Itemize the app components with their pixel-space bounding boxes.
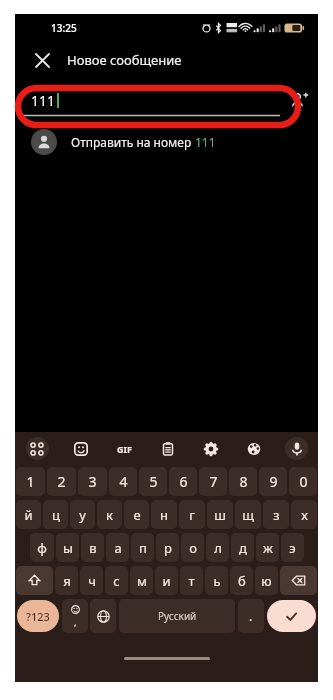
button[interactable]: Themes	[232, 432, 275, 465]
button[interactable]: ю	[255, 566, 278, 595]
staticText: 1	[26, 472, 35, 491]
button[interactable]: 1	[16, 467, 45, 496]
button[interactable]: т	[180, 566, 203, 595]
button[interactable]: Отправить на номер	[15, 124, 318, 160]
button[interactable]: Close	[28, 46, 56, 74]
button[interactable]: Emoji	[62, 599, 88, 633]
button[interactable]: о	[181, 533, 204, 562]
staticText: к	[106, 506, 113, 524]
button[interactable]: ь	[205, 566, 228, 595]
staticText: ж	[263, 539, 273, 557]
staticText: 9	[269, 472, 278, 491]
button[interactable]: 2	[47, 467, 76, 496]
button[interactable]: ?123	[17, 600, 59, 632]
staticText: п	[139, 539, 147, 557]
button[interactable]: у	[70, 500, 95, 529]
staticText: ь	[213, 572, 221, 590]
button[interactable]: Enter	[267, 600, 316, 632]
button[interactable]: Settings	[189, 432, 232, 465]
button[interactable]: Stickers	[59, 432, 103, 465]
button[interactable]: ц	[43, 500, 68, 529]
button[interactable]: к	[97, 500, 122, 529]
staticText: л	[214, 539, 222, 557]
staticText: 4	[119, 472, 128, 491]
button[interactable]: ы	[56, 533, 79, 562]
button[interactable]: м	[130, 566, 153, 595]
staticText: 0	[299, 472, 308, 491]
button[interactable]: э	[281, 533, 304, 562]
staticText: 8	[239, 472, 248, 491]
button[interactable]: ш	[207, 500, 233, 529]
button[interactable]: GIF	[103, 432, 146, 465]
staticText: 7	[209, 472, 218, 491]
button[interactable]: й	[16, 500, 41, 529]
button[interactable]: я	[55, 566, 78, 595]
staticText: ф	[37, 539, 47, 557]
staticText: ы	[63, 539, 73, 557]
staticText: 6	[179, 472, 188, 491]
button[interactable]: е	[124, 500, 149, 529]
staticText: я	[63, 572, 71, 590]
staticText: ,	[74, 616, 77, 628]
button[interactable]: 8	[229, 467, 257, 496]
button[interactable]: б	[230, 566, 253, 595]
button[interactable]: 5	[139, 467, 167, 496]
staticText: м	[137, 572, 147, 590]
button[interactable]: п	[131, 533, 154, 562]
staticText: д	[239, 539, 247, 557]
button[interactable]: 6	[169, 467, 197, 496]
staticText: Новое сообщение	[67, 51, 182, 69]
staticText: 2	[57, 472, 66, 491]
staticText: о	[189, 539, 197, 557]
button[interactable]: 9	[259, 467, 287, 496]
staticText: Отправить на номер	[71, 134, 195, 150]
button[interactable]: Voice input	[275, 432, 318, 465]
staticText: Русский	[158, 609, 197, 623]
button[interactable]: в	[81, 533, 104, 562]
button[interactable]: н	[151, 500, 177, 529]
button[interactable]: 111	[15, 83, 280, 117]
button[interactable]: л	[206, 533, 229, 562]
button[interactable]: Apps	[15, 432, 59, 465]
button[interactable]: а	[106, 533, 129, 562]
button[interactable]: и	[155, 566, 178, 595]
staticText: б	[238, 572, 246, 590]
button[interactable]: г	[179, 500, 205, 529]
staticText: т	[188, 572, 195, 590]
staticText: г	[189, 506, 195, 524]
button[interactable]: д	[231, 533, 254, 562]
staticText: ?123	[26, 609, 50, 624]
button[interactable]: Backspace	[280, 566, 317, 595]
button[interactable]: ч	[80, 566, 103, 595]
button[interactable]: .	[238, 599, 264, 633]
staticText: а	[114, 539, 122, 557]
staticText: щ	[242, 506, 254, 524]
staticText: в	[89, 539, 97, 557]
button[interactable]: Add contact	[280, 83, 318, 117]
button[interactable]: Clipboard	[146, 432, 189, 465]
button[interactable]: 0	[289, 467, 317, 496]
button[interactable]: х	[291, 500, 317, 529]
button[interactable]: з	[263, 500, 289, 529]
button[interactable]: 7	[199, 467, 227, 496]
staticText: 13:25	[51, 21, 77, 35]
button[interactable]: щ	[235, 500, 261, 529]
button[interactable]: 4	[109, 467, 137, 496]
button[interactable]: Shift	[16, 566, 53, 595]
button[interactable]: 3	[78, 467, 107, 496]
staticText: ч	[88, 572, 96, 590]
staticText: 3	[88, 472, 97, 491]
button[interactable]: ф	[30, 533, 54, 562]
staticText: э	[289, 539, 296, 557]
staticText: 111	[31, 91, 56, 110]
button[interactable]: ж	[256, 533, 279, 562]
button[interactable]: с	[105, 566, 128, 595]
staticText: ц	[52, 506, 60, 524]
button[interactable]: р	[156, 533, 179, 562]
staticText: е	[133, 506, 141, 524]
staticText: с	[113, 572, 120, 590]
staticText: ю	[261, 572, 272, 590]
staticText: GIF	[117, 443, 132, 455]
button[interactable]: Русский	[119, 599, 235, 633]
button[interactable]: Change language	[90, 599, 116, 633]
